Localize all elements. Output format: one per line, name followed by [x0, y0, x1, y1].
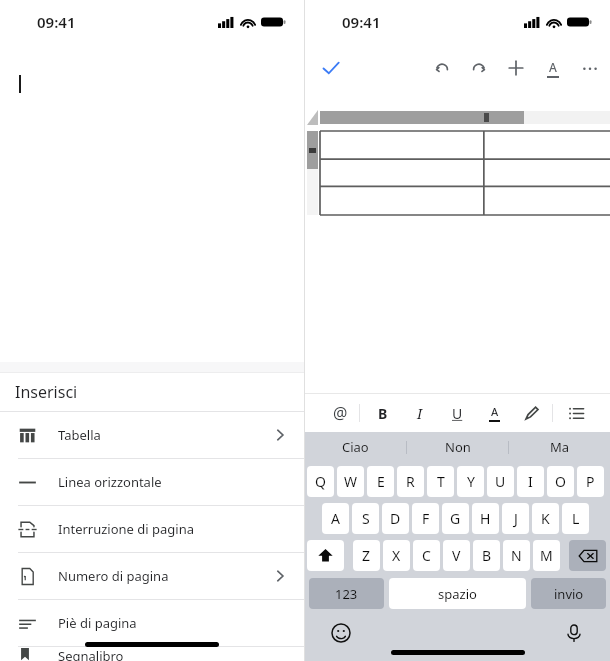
- staticText: M: [540, 546, 553, 565]
- button[interactable]: C: [413, 540, 440, 571]
- button[interactable]: B: [473, 540, 500, 571]
- staticText: C: [422, 546, 431, 565]
- staticText: A: [549, 59, 557, 75]
- staticText: V: [452, 546, 461, 565]
- button[interactable]: T: [427, 466, 454, 497]
- button[interactable]: Key: [307, 540, 344, 571]
- staticText: X: [392, 546, 401, 565]
- staticText: Z: [362, 546, 371, 565]
- staticText: U: [452, 404, 463, 423]
- button[interactable]: Key: [569, 540, 606, 571]
- button[interactable]: H: [472, 503, 499, 534]
- staticText: I: [417, 404, 423, 423]
- button[interactable]: Ciao: [305, 432, 406, 462]
- staticText: I: [528, 472, 533, 491]
- staticText: Interruzione di pagina: [58, 520, 195, 538]
- staticText: Tabella: [58, 426, 101, 444]
- staticText: A: [331, 509, 340, 528]
- staticText: B: [378, 404, 388, 423]
- staticText: W: [344, 472, 358, 491]
- button[interactable]: U: [487, 466, 514, 497]
- button[interactable]: Insert: [506, 58, 526, 78]
- staticText: T: [437, 472, 445, 491]
- button[interactable]: List: [563, 400, 589, 426]
- staticText: S: [362, 509, 370, 528]
- button[interactable]: K: [532, 503, 559, 534]
- button[interactable]: Text color: [481, 400, 507, 426]
- button[interactable]: F: [412, 503, 439, 534]
- staticText: @: [333, 402, 348, 424]
- staticText: 123: [335, 585, 358, 603]
- staticText: J: [514, 509, 518, 528]
- staticText: Y: [467, 472, 475, 491]
- staticText: Linea orizzontale: [58, 473, 162, 491]
- button[interactable]: M: [533, 540, 560, 571]
- button[interactable]: Piè di pagina: [0, 600, 304, 646]
- button[interactable]: Linea orizzontale: [0, 459, 304, 505]
- button[interactable]: U: [444, 400, 470, 426]
- staticText: P: [586, 472, 595, 491]
- staticText: 09:41: [37, 12, 76, 32]
- button[interactable]: Non: [407, 432, 508, 462]
- staticText: Segnalibro: [58, 647, 124, 661]
- staticText: D: [390, 509, 401, 528]
- button[interactable]: P: [577, 466, 604, 497]
- staticText: O: [555, 472, 566, 491]
- button[interactable]: W: [337, 466, 364, 497]
- button[interactable]: spazio: [389, 578, 526, 609]
- staticText: Numero di pagina: [58, 567, 169, 585]
- button[interactable]: Z: [353, 540, 380, 571]
- staticText: F: [422, 509, 430, 528]
- button[interactable]: Q: [307, 466, 334, 497]
- button[interactable]: Format: [543, 58, 563, 78]
- button[interactable]: J: [502, 503, 529, 534]
- button[interactable]: N: [503, 540, 530, 571]
- button[interactable]: V: [443, 540, 470, 571]
- button[interactable]: Undo: [432, 58, 452, 78]
- button[interactable]: R: [397, 466, 424, 497]
- staticText: E: [377, 472, 385, 491]
- button[interactable]: Redo: [469, 58, 489, 78]
- button[interactable]: 123: [309, 578, 384, 609]
- button[interactable]: Highlight: [518, 400, 544, 426]
- staticText: Ma: [550, 438, 570, 456]
- button[interactable]: Ma: [509, 432, 610, 462]
- button[interactable]: invio: [531, 578, 606, 609]
- staticText: N: [511, 546, 522, 565]
- button[interactable]: I: [517, 466, 544, 497]
- button[interactable]: Tabella: [0, 412, 304, 458]
- button[interactable]: Numero di pagina: [0, 553, 304, 599]
- staticText: U: [495, 472, 506, 491]
- button[interactable]: Mention: [327, 400, 353, 426]
- staticText: Ciao: [342, 438, 369, 456]
- button[interactable]: S: [352, 503, 379, 534]
- button[interactable]: B: [370, 400, 396, 426]
- staticText: Q: [315, 472, 326, 491]
- button[interactable]: Dictate: [562, 621, 586, 645]
- button[interactable]: Interruzione di pagina: [0, 506, 304, 552]
- staticText: L: [572, 509, 580, 528]
- button[interactable]: L: [562, 503, 589, 534]
- staticText: Piè di pagina: [58, 614, 137, 632]
- button[interactable]: G: [442, 503, 469, 534]
- button[interactable]: Done: [316, 53, 346, 83]
- button[interactable]: A: [322, 503, 349, 534]
- staticText: Non: [445, 438, 471, 456]
- button[interactable]: Segnalibro: [0, 647, 304, 661]
- staticText: 09:41: [342, 12, 381, 32]
- button[interactable]: Emoji: [329, 621, 353, 645]
- staticText: A: [491, 404, 499, 419]
- staticText: H: [480, 509, 491, 528]
- button[interactable]: D: [382, 503, 409, 534]
- staticText: R: [406, 472, 415, 491]
- button[interactable]: E: [367, 466, 394, 497]
- staticText: spazio: [438, 585, 477, 603]
- staticText: K: [541, 509, 550, 528]
- button[interactable]: O: [547, 466, 574, 497]
- staticText: Inserisci: [15, 381, 78, 403]
- button[interactable]: More options: [580, 58, 600, 78]
- button[interactable]: I: [407, 400, 433, 426]
- button[interactable]: X: [383, 540, 410, 571]
- button[interactable]: Y: [457, 466, 484, 497]
- staticText: B: [482, 546, 492, 565]
